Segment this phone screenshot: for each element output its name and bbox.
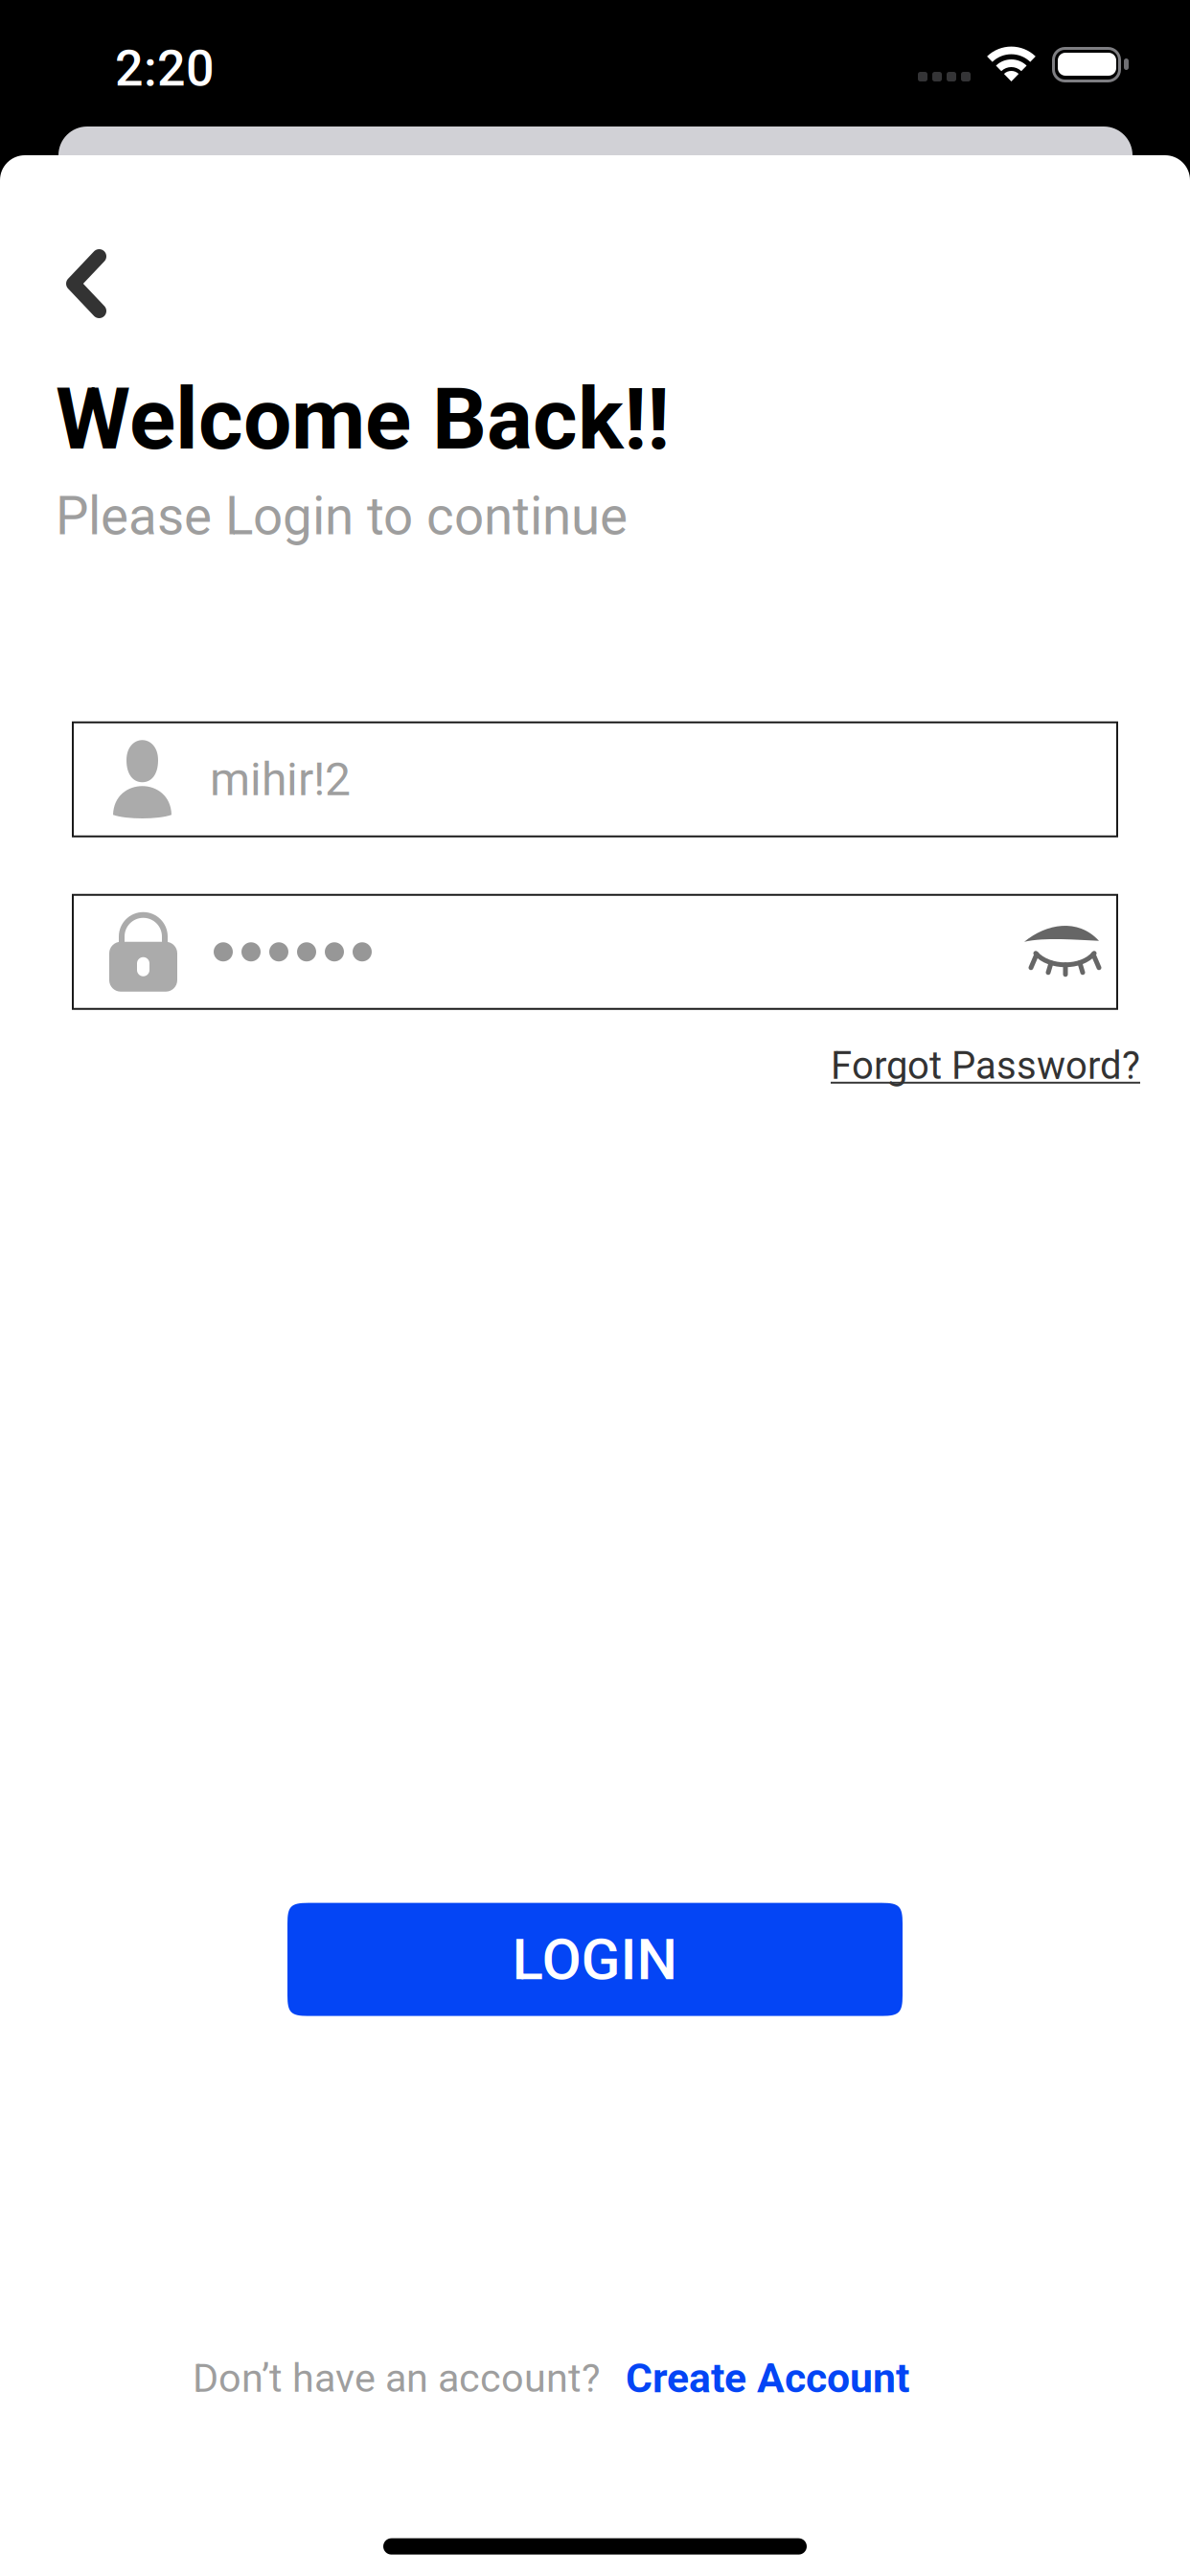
- button[interactable]: Show password: [1001, 912, 1117, 992]
- staticText: Don’t have an account?: [193, 2355, 601, 2401]
- button[interactable]: Back: [0, 232, 141, 335]
- staticText: 2:20: [115, 39, 215, 98]
- button[interactable]: LOGIN: [287, 1903, 903, 2016]
- button[interactable]: Create Account: [601, 2354, 909, 2402]
- staticText: LOGIN: [512, 1926, 678, 1993]
- staticText: Forgot Password?: [831, 1043, 1140, 1088]
- staticText: Please Login to continue: [56, 486, 628, 547]
- button[interactable]: Forgot Password?: [831, 1043, 1140, 1088]
- staticText: Welcome Back!!: [56, 369, 670, 469]
- staticText: mihir!2: [210, 752, 351, 806]
- staticText: Create Account: [626, 2354, 909, 2402]
